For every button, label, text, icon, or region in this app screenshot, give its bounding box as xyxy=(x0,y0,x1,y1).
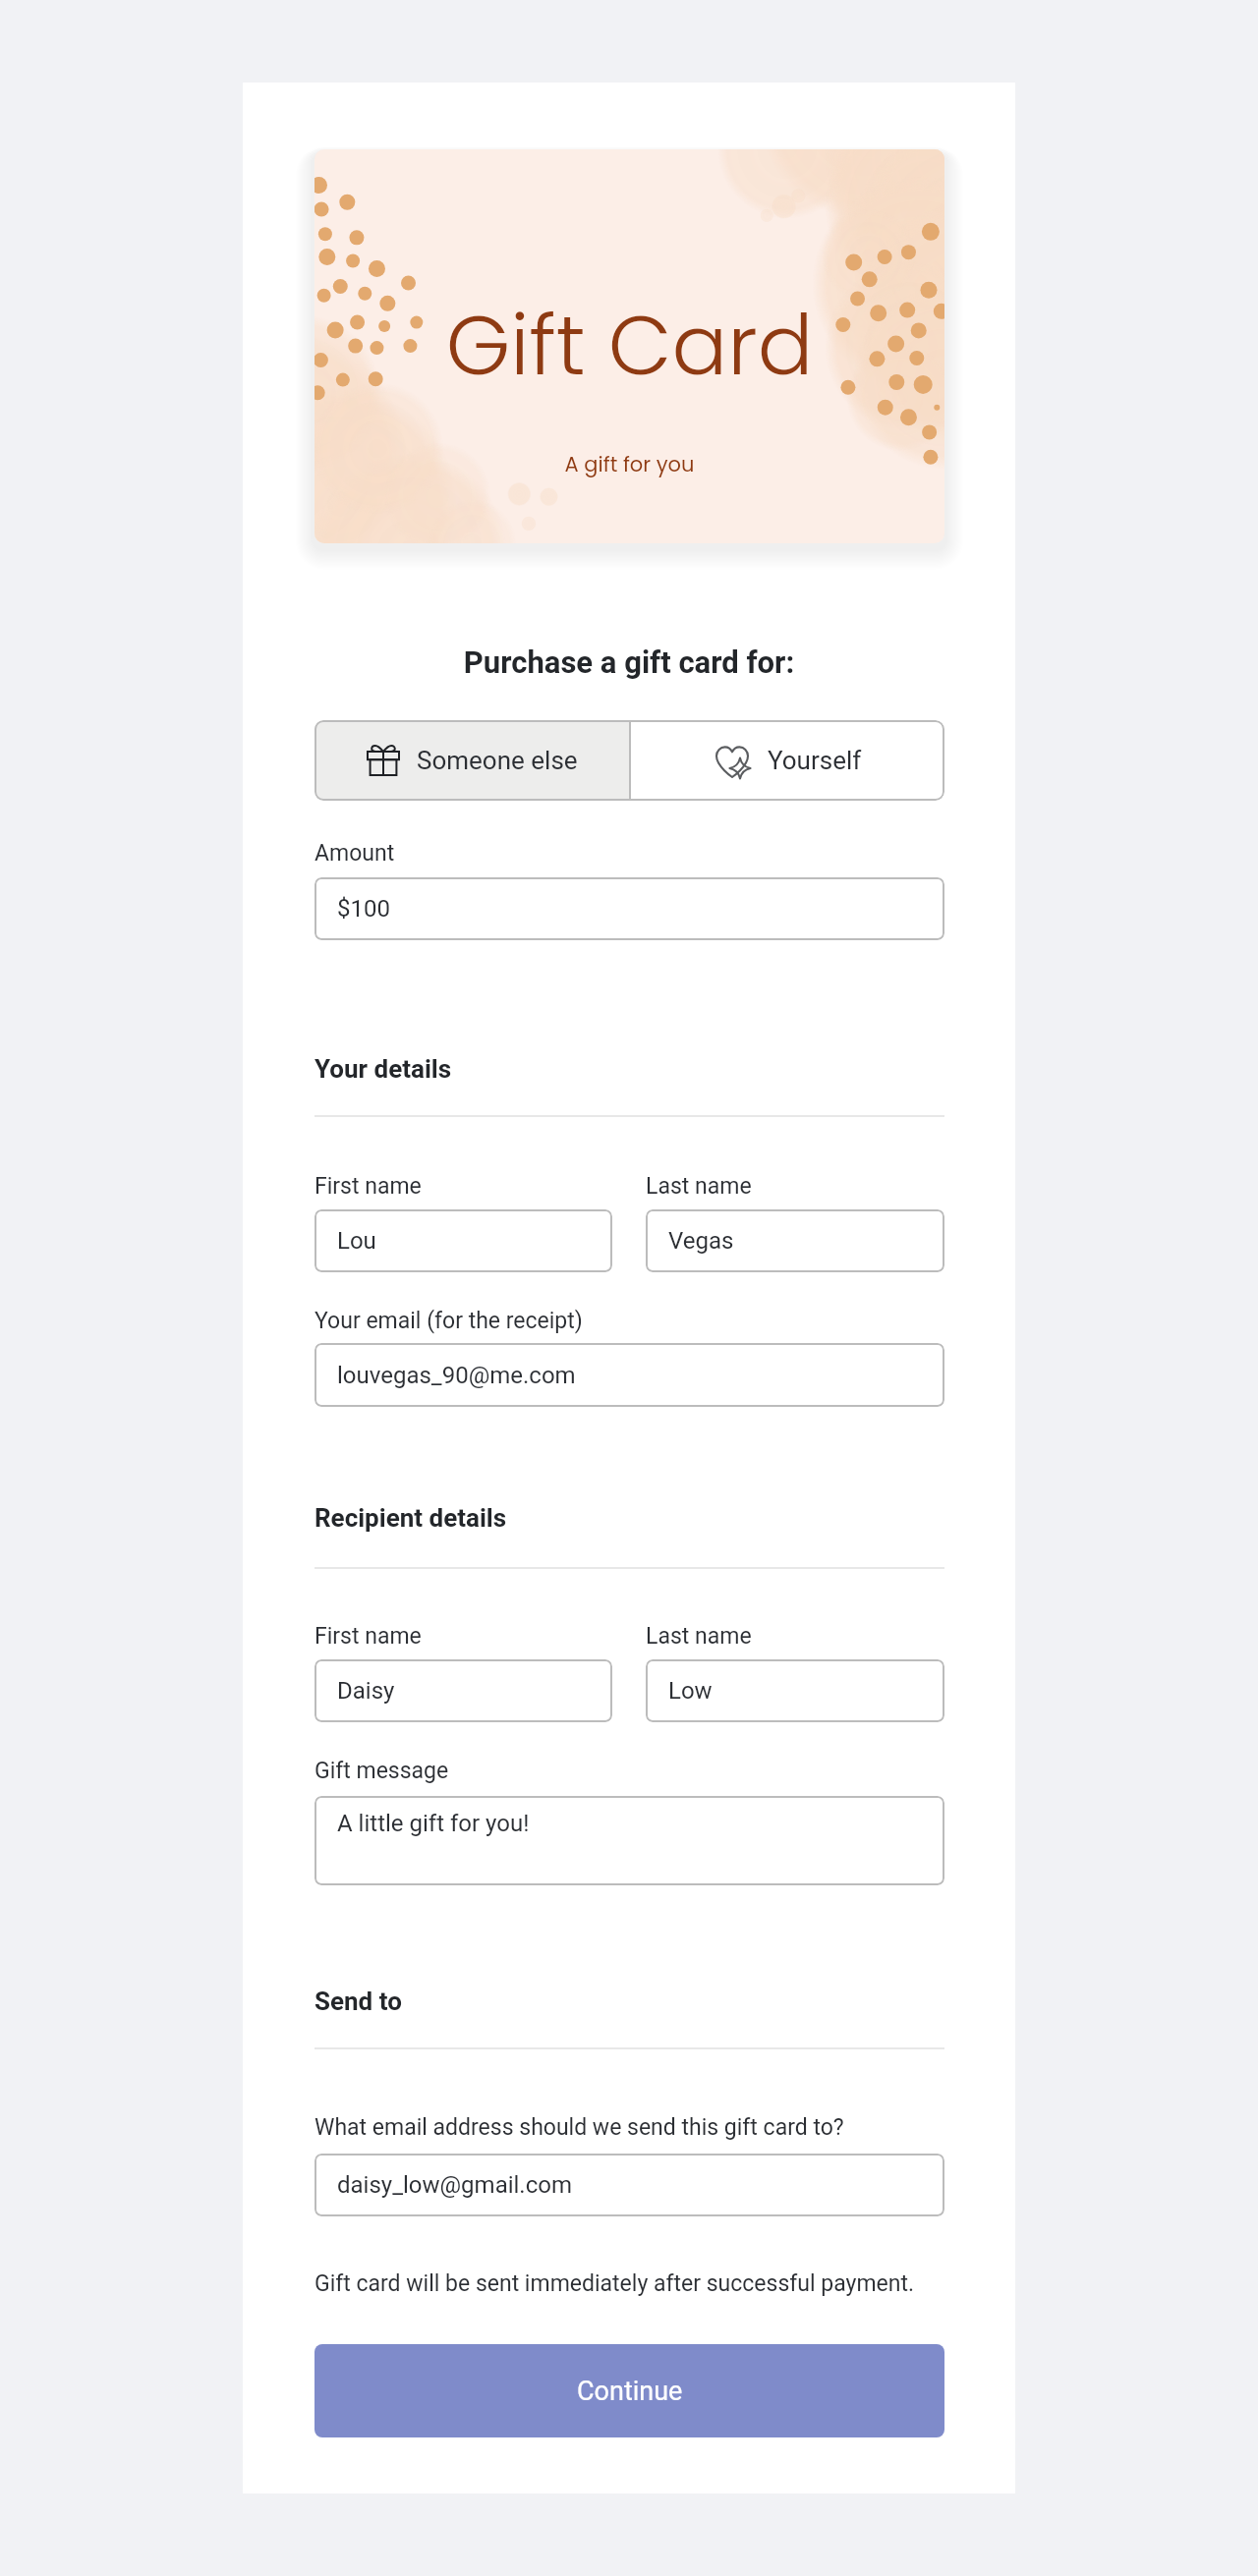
staticText: Someone else xyxy=(417,746,578,775)
staticText: First name xyxy=(314,1173,422,1200)
other: Someone else xyxy=(367,745,400,776)
staticText: Recipient details xyxy=(314,1503,507,1533)
staticText: Your details xyxy=(314,1054,452,1084)
button[interactable]: Lou xyxy=(314,1209,612,1272)
staticText: Last name xyxy=(646,1173,752,1200)
staticText: $100 xyxy=(337,895,390,923)
staticText: First name xyxy=(314,1623,422,1650)
button[interactable]: A little gift for you! xyxy=(314,1796,944,1885)
staticText: Lou xyxy=(337,1227,376,1255)
staticText: Last name xyxy=(646,1623,752,1650)
other: Yourself xyxy=(715,742,757,780)
staticText: Gift card will be sent immediately after… xyxy=(314,2270,915,2297)
staticText: Yourself xyxy=(768,746,862,775)
button[interactable]: Daisy xyxy=(314,1659,612,1722)
staticText: What email address should we send this g… xyxy=(314,2114,844,2141)
button[interactable]: Yourself xyxy=(631,720,944,801)
button[interactable]: louvegas_90@me.com xyxy=(314,1343,944,1407)
staticText: A gift for you xyxy=(314,450,944,478)
staticText: Send to xyxy=(314,1987,402,2016)
staticText: daisy_low@gmail.com xyxy=(337,2171,572,2199)
button[interactable]: Someone else xyxy=(314,720,629,801)
staticText: Continue xyxy=(577,2376,683,2407)
staticText: Vegas xyxy=(668,1227,734,1255)
staticText: louvegas_90@me.com xyxy=(337,1362,576,1389)
button[interactable]: Continue xyxy=(314,2344,944,2437)
staticText: Daisy xyxy=(337,1677,395,1705)
button[interactable]: Vegas xyxy=(646,1209,944,1272)
staticText: Gift Card xyxy=(314,288,944,404)
staticText: Purchase a gift card for: xyxy=(243,644,1015,680)
button[interactable]: Low xyxy=(646,1659,944,1722)
staticText: Low xyxy=(668,1677,713,1705)
staticText: Gift message xyxy=(314,1758,449,1784)
button[interactable]: $100 xyxy=(314,877,944,940)
button[interactable]: daisy_low@gmail.com xyxy=(314,2154,944,2216)
staticText: Amount xyxy=(314,840,395,867)
staticText: A little gift for you! xyxy=(337,1810,530,1837)
staticText: Your email (for the receipt) xyxy=(314,1308,583,1334)
